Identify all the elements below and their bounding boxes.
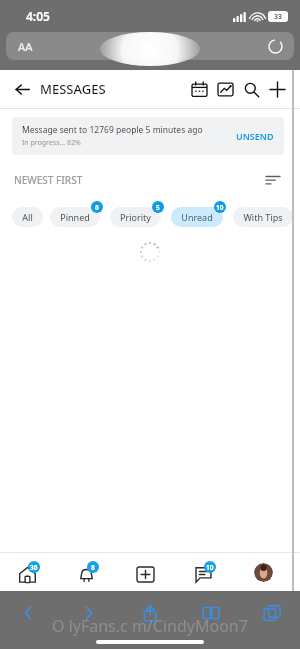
button[interactable]: UNSEND xyxy=(236,130,274,142)
staticText: In progress... 82% xyxy=(22,138,81,148)
button[interactable]: With Tips xyxy=(233,207,293,227)
staticText: 8 xyxy=(91,563,95,572)
staticText: O lyFans.c m/CindyMoon7 xyxy=(52,615,248,637)
button[interactable]: Notifications xyxy=(59,553,118,591)
staticText: 33 xyxy=(274,12,283,22)
staticText: 36 xyxy=(30,563,38,572)
button[interactable]: Back xyxy=(8,75,36,103)
other: Reload xyxy=(269,40,282,53)
staticText: 10 xyxy=(206,563,214,572)
staticText: MESSAGES xyxy=(40,80,106,98)
staticText: NEWEST FIRST xyxy=(14,173,83,187)
button[interactable]: Back xyxy=(14,599,42,627)
button[interactable]: Messages xyxy=(176,553,234,591)
staticText: Unread xyxy=(181,211,213,223)
button[interactable]: Bookmarks xyxy=(197,599,225,627)
staticText: 5 xyxy=(156,203,160,212)
button[interactable]: Profile xyxy=(234,563,292,582)
staticText: 10 xyxy=(216,203,224,212)
staticText: Priority xyxy=(120,211,151,223)
staticText: 4:05 xyxy=(26,8,50,24)
button[interactable]: All xyxy=(12,207,43,227)
staticText: All xyxy=(22,211,33,223)
button[interactable]: Share xyxy=(136,599,164,627)
button[interactable]: Search xyxy=(238,76,264,102)
button[interactable]: Forward xyxy=(75,599,103,627)
button[interactable]: New message xyxy=(264,76,290,102)
button[interactable]: Unread xyxy=(171,207,223,227)
button[interactable]: Priority xyxy=(110,207,161,227)
staticText: Pinned xyxy=(60,211,90,223)
button[interactable]: Home xyxy=(0,553,59,591)
button[interactable]: Pinned xyxy=(50,207,100,227)
button[interactable]: AA xyxy=(6,32,294,60)
staticText: AA xyxy=(18,39,33,54)
staticText: 6 xyxy=(95,203,99,212)
staticText: With Tips xyxy=(243,211,283,223)
button[interactable]: Calendar xyxy=(186,76,212,102)
button[interactable]: Create post xyxy=(118,553,176,591)
staticText: Message sent to 12769 people 5 minutes a… xyxy=(22,124,203,136)
button[interactable]: Tabs xyxy=(258,599,286,627)
button[interactable]: Sort xyxy=(262,169,284,191)
button[interactable]: Message sent to 12769 people 5 minutes a… xyxy=(12,117,284,155)
button[interactable]: Statistics xyxy=(212,76,238,102)
